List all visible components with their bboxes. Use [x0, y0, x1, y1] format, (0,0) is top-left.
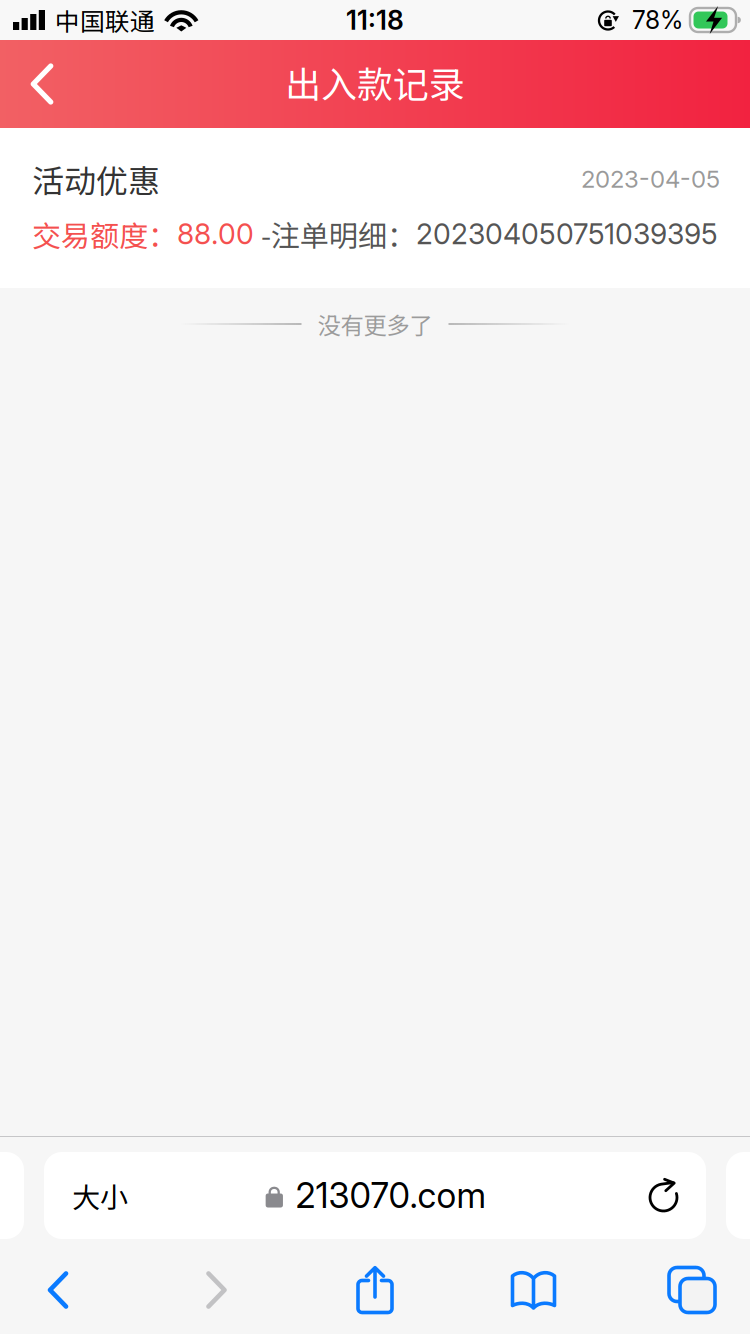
button[interactable]: Forward [158, 1252, 274, 1328]
staticText: 88.00 [177, 217, 254, 251]
staticText: 11:18 [346, 4, 404, 36]
staticText: 78% [632, 5, 683, 35]
staticText: 2023-04-05 [581, 164, 720, 193]
button[interactable]: Share [317, 1252, 433, 1328]
button[interactable]: 大小 [44, 1152, 706, 1239]
staticText: 大小 [72, 1175, 128, 1216]
staticText: 202304050751039395 [416, 217, 718, 251]
button[interactable]: Back [0, 40, 84, 128]
button[interactable]: Bookmarks [475, 1252, 591, 1328]
staticText: 交易额度： [32, 213, 177, 255]
button[interactable]: Back [0, 1252, 116, 1328]
staticText: 213070.com [295, 1174, 486, 1216]
button[interactable]: Tabs [634, 1252, 750, 1328]
staticText: 没有更多了 [317, 307, 432, 341]
staticText: -注单明细： [254, 213, 416, 255]
staticText: 中国联通 [55, 2, 155, 38]
staticText: 活动优惠 [32, 156, 160, 202]
staticText: 出入款记录 [285, 56, 465, 108]
